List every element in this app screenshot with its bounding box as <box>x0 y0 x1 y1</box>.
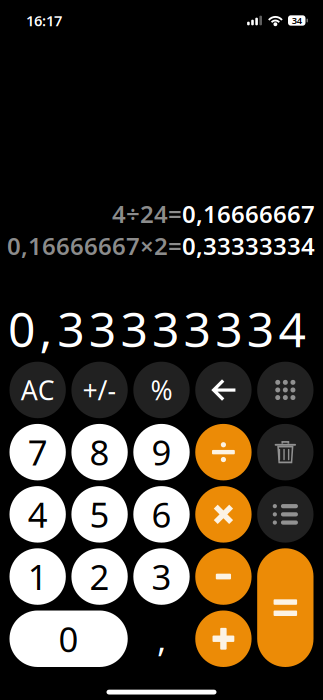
staticText: 34 <box>292 14 302 27</box>
button[interactable]: Equals <box>257 548 313 667</box>
button[interactable]: All clear <box>9 362 66 418</box>
button[interactable]: Decimal separator <box>133 610 190 667</box>
button[interactable]: 1 <box>9 548 66 605</box>
staticText: 0 <box>59 616 79 662</box>
button[interactable]: Keypad <box>257 362 313 418</box>
staticText: 6 <box>151 491 171 537</box>
staticText: AC <box>21 372 55 408</box>
button[interactable]: 9 <box>133 424 190 480</box>
button[interactable]: 5 <box>71 486 128 543</box>
button[interactable]: Minus <box>195 548 252 605</box>
staticText: 8 <box>90 429 110 475</box>
staticText: 2 <box>90 553 110 599</box>
staticText: 0,33333334 <box>8 297 305 360</box>
staticText: 4÷24= <box>112 198 182 230</box>
button[interactable]: 3 <box>133 548 190 605</box>
button[interactable]: Plus minus <box>71 362 128 418</box>
button[interactable]: Plus <box>195 610 252 667</box>
staticText: 4 <box>28 491 48 537</box>
button[interactable]: 2 <box>71 548 128 605</box>
staticText: , <box>157 616 166 662</box>
button[interactable]: Backspace <box>195 362 252 418</box>
staticText: 0,33333334 <box>182 230 315 262</box>
staticText: 16:17 <box>26 11 62 30</box>
button[interactable]: 8 <box>71 424 128 480</box>
button[interactable]: Multiply <box>195 486 252 543</box>
staticText: 0,16666667×2= <box>7 230 182 262</box>
staticText: 1 <box>28 553 48 599</box>
button[interactable]: Divide <box>195 424 252 480</box>
staticText: 7 <box>28 429 48 475</box>
button[interactable]: History <box>257 486 313 543</box>
button[interactable]: 0 <box>9 610 128 667</box>
staticText: 0,16666667 <box>182 198 315 230</box>
button[interactable]: 7 <box>9 424 66 480</box>
staticText: % <box>150 372 172 408</box>
button[interactable]: Clear history <box>257 424 313 480</box>
staticText: 9 <box>151 429 171 475</box>
staticText: 5 <box>90 491 110 537</box>
button[interactable]: 6 <box>133 486 190 543</box>
button[interactable]: 4 <box>9 486 66 543</box>
staticText: +/- <box>83 372 117 408</box>
button[interactable]: Percent <box>133 362 190 418</box>
staticText: 3 <box>151 553 171 599</box>
